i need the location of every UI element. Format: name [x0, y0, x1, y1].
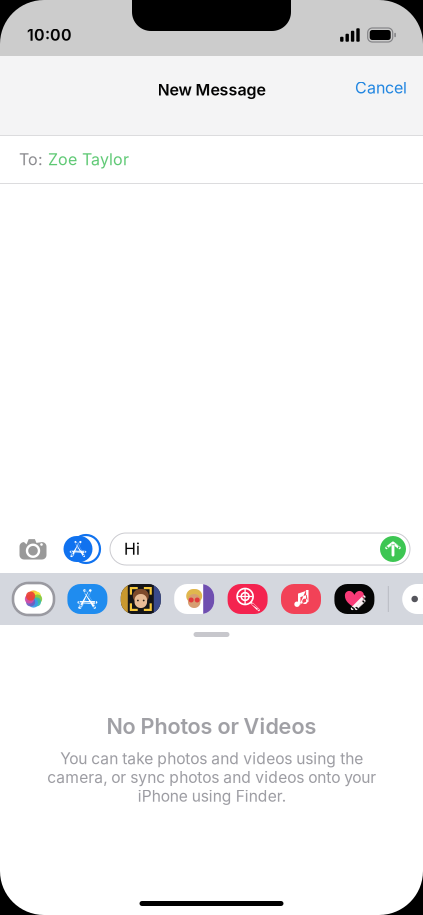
- button[interactable]: Send: [378, 533, 408, 565]
- staticText: Cancel: [355, 78, 407, 97]
- staticText: Hi: [124, 539, 140, 559]
- staticText: New Message: [157, 80, 265, 99]
- button[interactable]: Memoji stickers: [174, 582, 214, 616]
- staticText: You can take photos and videos using the…: [47, 749, 376, 806]
- button[interactable]: Fitness: [334, 582, 374, 616]
- button[interactable]: More apps: [402, 582, 423, 616]
- staticText: Zoe Taylor: [48, 150, 129, 169]
- button[interactable]: Music: [281, 582, 321, 616]
- staticText: No Photos or Videos: [106, 713, 316, 739]
- button[interactable]: To:: [0, 136, 423, 183]
- button[interactable]: Memoji: [121, 582, 161, 616]
- button[interactable]: Camera: [10, 527, 56, 571]
- staticText: To:: [19, 150, 48, 169]
- button[interactable]: App Store: [67, 582, 107, 616]
- button[interactable]: Photos: [13, 582, 54, 616]
- button[interactable]: Cancel: [339, 56, 423, 111]
- button[interactable]: App Store: [56, 527, 100, 571]
- button[interactable]: Images: [228, 582, 268, 616]
- staticText: 10:00: [27, 25, 72, 45]
